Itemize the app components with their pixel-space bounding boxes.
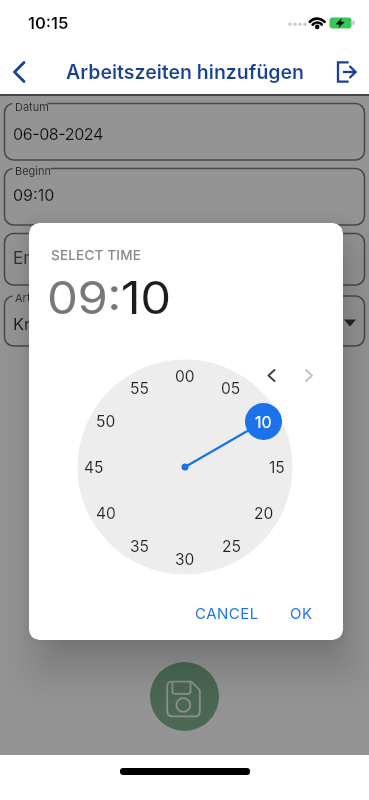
staticText: 25 [222,537,241,556]
button[interactable] [257,361,287,391]
staticText: 09:10 [47,270,171,324]
button[interactable] [5,233,365,285]
staticText: 55 [130,379,149,398]
button[interactable]: 10 [245,403,282,440]
staticText: Datum [15,100,49,113]
staticText: 45 [84,458,104,477]
staticText: OK [290,604,313,622]
staticText: 00 [175,367,195,386]
staticText: 30 [175,550,195,569]
staticText: 09:10 [13,185,55,204]
button[interactable] [150,662,219,731]
button[interactable] [6,56,38,88]
button[interactable]: CANCEL [194,595,259,631]
staticText: 06-08-2024 [13,124,103,143]
staticText: SELECT TIME [51,247,142,263]
button[interactable] [5,297,365,347]
staticText: 05 [221,379,241,398]
staticText: Ende [13,248,54,269]
button[interactable] [295,361,325,391]
staticText: Krankheit [13,314,88,334]
button[interactable]: OK [281,595,321,631]
staticText: Art der Arbeitszeit [15,291,110,304]
staticText: Beginn [15,164,52,177]
staticText: CANCEL [195,604,259,622]
staticText: 15 [269,458,285,477]
button[interactable] [5,102,365,160]
staticText: 50 [96,412,116,431]
staticText: 10 [255,412,272,431]
staticText: 20 [254,504,274,523]
button[interactable] [330,56,364,88]
staticText: Arbeitszeiten hinzufügen [66,60,304,84]
staticText: 10:15 [28,13,69,33]
button[interactable] [5,170,365,228]
staticText: 35 [130,537,149,556]
staticText: 40 [96,504,116,523]
